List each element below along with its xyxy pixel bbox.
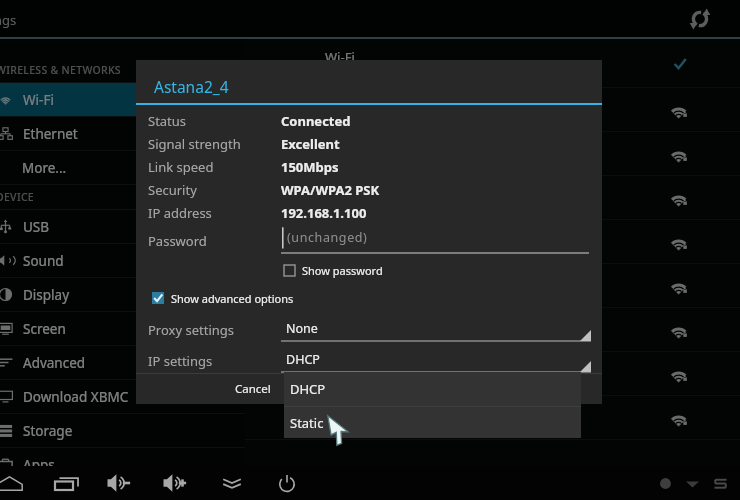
staticText: Secured with WPA2 (325, 333, 420, 347)
staticText: Beeline_5GHz (325, 138, 412, 156)
staticText: Ethernet (23, 125, 78, 143)
staticText: Display (23, 286, 70, 304)
button[interactable]: None (281, 320, 591, 342)
staticText: USB (23, 218, 50, 236)
staticText: TP-LINK_A3F2 (325, 182, 413, 200)
staticText: More... (22, 159, 67, 177)
staticText: Wi-Fi (325, 48, 355, 66)
button[interactable]: DHCP (281, 351, 591, 373)
button[interactable]: TP-LINK_A3F2 (245, 176, 740, 220)
button[interactable]: Screen (0, 312, 245, 345)
button[interactable]: Guest_WiFi (245, 308, 740, 352)
button[interactable]: Sound (0, 244, 245, 277)
staticText: WIRELESS & NETWORKS (0, 63, 121, 77)
button[interactable]: Dom.ru-8821 (245, 396, 740, 440)
staticText: Dom.ru-8821 (325, 402, 409, 420)
button[interactable]: Recents (39, 466, 93, 500)
button[interactable]: Static (284, 407, 581, 438)
staticText: Wi-Fi (23, 91, 54, 109)
staticText: Download XBMC (23, 388, 129, 406)
staticText: Screen (23, 320, 66, 338)
staticText: HomeNet (325, 226, 387, 244)
staticText: Status (148, 112, 187, 130)
staticText: Secured with WPA2 (325, 113, 420, 127)
button[interactable]: More... (0, 151, 245, 184)
button[interactable]: Advanced (0, 346, 245, 379)
staticText: Proxy settings (148, 321, 235, 339)
staticText: DHCP (290, 380, 326, 398)
button[interactable]: Wi-Fi on (668, 52, 692, 76)
staticText: 192.168.1.100 (281, 204, 367, 222)
button[interactable]: Power (260, 466, 314, 500)
button[interactable]: Hide (205, 466, 259, 500)
button[interactable]: Download XBMC (0, 380, 245, 413)
staticText: Secured with WPA2 (325, 157, 420, 171)
button[interactable]: Refresh (689, 8, 711, 30)
staticText: 150Mbps (281, 158, 339, 176)
staticText: Secured with WPA2 (325, 421, 420, 435)
staticText: Advanced (23, 354, 86, 372)
button[interactable]: Volume down (93, 466, 147, 500)
button[interactable]: Ethernet (0, 117, 245, 150)
staticText: IP address (148, 204, 212, 222)
staticText: Password (148, 232, 207, 250)
staticText: Show advanced options (171, 291, 294, 306)
button[interactable]: Apps (0, 448, 245, 481)
button[interactable]: Show password (284, 261, 383, 279)
button[interactable]: (unchanged) (281, 223, 589, 254)
staticText: Sound (23, 252, 64, 270)
button[interactable]: Wi-Fi (0, 83, 245, 116)
staticText: Signal strength (148, 135, 241, 153)
staticText: IP settings (148, 352, 213, 370)
staticText: Keremet (325, 270, 379, 288)
button[interactable]: HomeNet (245, 220, 740, 264)
staticText: DEVICE (0, 190, 35, 204)
staticText: Excellent (281, 135, 340, 153)
button[interactable]: USB (0, 210, 245, 243)
button[interactable]: Home (0, 466, 36, 500)
staticText: Secured with WPA2 (325, 245, 420, 259)
staticText: DHCP (286, 351, 320, 368)
staticText: Apps (23, 456, 55, 474)
staticText: Astana2_4 (154, 76, 229, 97)
staticText: Show password (302, 263, 383, 278)
staticText: Cancel (235, 381, 271, 397)
staticText: None (286, 320, 318, 337)
staticText: Security (148, 181, 197, 199)
staticText: Link speed (148, 158, 214, 176)
staticText: Astana2_4 (325, 94, 390, 112)
staticText: (unchanged) (287, 229, 368, 246)
staticText: ngs (0, 11, 17, 29)
button[interactable]: ALMATY-2 (245, 352, 740, 396)
staticText: Secured with WPA2 (325, 201, 420, 215)
staticText: ALMATY-2 (325, 358, 388, 376)
button[interactable]: Keremet (245, 264, 740, 308)
button[interactable]: Volume up (149, 466, 203, 500)
staticText: Storage (23, 422, 73, 440)
button[interactable]: Beeline_5GHz (245, 132, 740, 176)
staticText: Connected (281, 112, 351, 130)
staticText: WPA/WPA2 PSK (281, 181, 380, 199)
button[interactable]: DHCP (284, 372, 581, 406)
button[interactable]: Display (0, 278, 245, 311)
staticText: Static (290, 414, 324, 432)
button[interactable]: Storage (0, 414, 245, 447)
button[interactable]: Astana2_4 (245, 88, 740, 132)
button[interactable]: Cancel (224, 374, 282, 404)
button[interactable]: Show advanced options (152, 289, 294, 307)
